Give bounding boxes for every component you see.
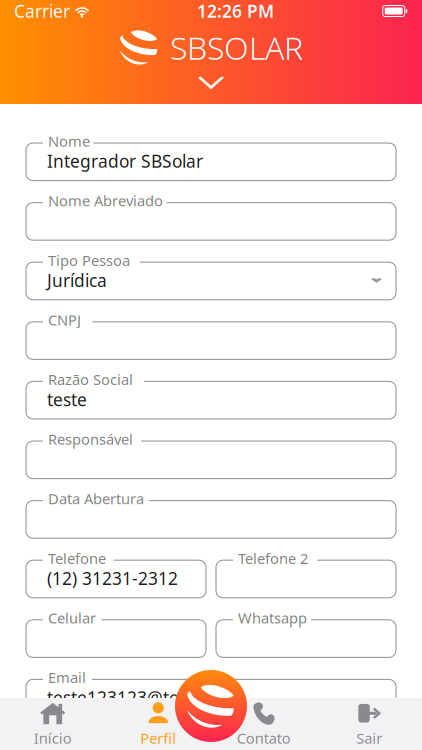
staticText: teste: [47, 388, 87, 411]
staticText: Sair: [356, 728, 382, 748]
staticText: Nome Abreviado: [48, 191, 163, 210]
staticText: SBSOLAR: [170, 26, 303, 68]
staticText: Carrier: [14, 0, 70, 22]
button[interactable]: Sair: [316, 698, 422, 750]
button[interactable]: Perfil: [105, 698, 211, 750]
staticText: Tipo Pessoa: [48, 250, 130, 270]
staticText: Jurídica: [47, 269, 107, 292]
staticText: Início: [34, 728, 72, 748]
staticText: Responsável: [48, 429, 133, 449]
staticText: Razão Social: [48, 370, 133, 389]
staticText: Nome: [48, 131, 90, 151]
button[interactable]: SBSolar: [175, 670, 247, 742]
staticText: 12:26 PM: [197, 0, 274, 22]
staticText: Contato: [237, 728, 291, 748]
staticText: Telefone: [48, 548, 106, 568]
staticText: Perfil: [140, 728, 176, 748]
button[interactable]: Collapse header: [198, 76, 224, 90]
staticText: Email: [48, 668, 86, 687]
staticText: Telefone 2: [238, 548, 308, 568]
staticText: teste123123@teste.com: [47, 686, 242, 709]
staticText: (12) 31231-2312: [47, 567, 178, 590]
staticText: CNPJ: [48, 310, 81, 330]
button[interactable]: Contato: [211, 698, 316, 750]
staticText: Integrador SBSolar: [47, 149, 203, 172]
staticText: Celular: [48, 608, 96, 628]
staticText: Whatsapp: [238, 608, 307, 628]
button[interactable]: Início: [0, 698, 105, 750]
staticText: Data Abertura: [48, 489, 144, 508]
